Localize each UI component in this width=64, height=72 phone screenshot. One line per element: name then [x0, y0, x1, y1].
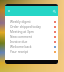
- staticText: Your receipt: [10, 50, 28, 54]
- staticText: Invoice due: [10, 40, 28, 44]
- button[interactable]: Menu: [7, 9, 11, 13]
- button[interactable]: New comment: [5, 34, 58, 39]
- button[interactable]: Welcome back: [5, 44, 58, 49]
- button[interactable]: Weekly digest: [5, 19, 58, 24]
- button[interactable]: Invoice due: [5, 39, 58, 44]
- button[interactable]: Your receipt: [5, 49, 58, 54]
- staticText: Welcome back: [10, 45, 32, 49]
- button[interactable]: Search: [52, 9, 56, 13]
- staticText: New comment: [10, 35, 32, 39]
- staticText: Weekly digest: [10, 20, 31, 24]
- staticText: Order shipped today: [10, 25, 41, 29]
- button[interactable]: Meeting at 3pm: [5, 29, 58, 34]
- button[interactable]: Order shipped today: [5, 24, 58, 29]
- staticText: Meeting at 3pm: [10, 30, 34, 34]
